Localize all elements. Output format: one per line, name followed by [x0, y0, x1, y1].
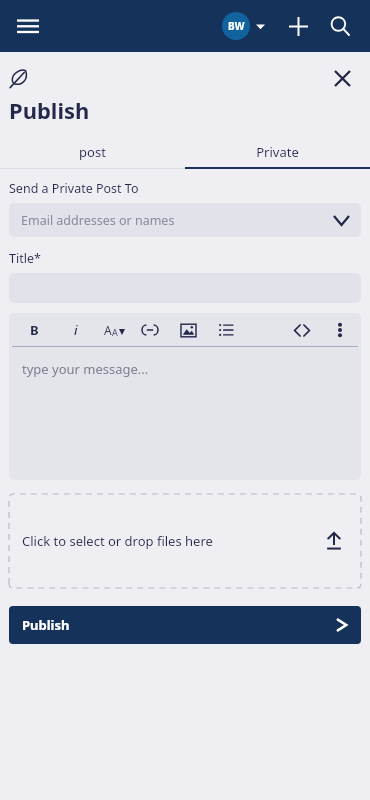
- staticText: Send a Private Post To: [9, 180, 139, 197]
- button[interactable]: Click to select or drop files here: [9, 494, 361, 588]
- button[interactable]: Code: [291, 319, 313, 341]
- staticText: Publish: [22, 616, 70, 634]
- button[interactable]: type your message...: [9, 347, 361, 480]
- button[interactable]: Italic: [65, 319, 87, 341]
- button[interactable]: Publish: [9, 606, 361, 644]
- button[interactable]: Logo: [9, 63, 39, 93]
- staticText: B: [30, 321, 39, 339]
- button[interactable]: Link: [139, 319, 161, 341]
- button[interactable]: Close: [324, 60, 360, 96]
- button[interactable]: post: [0, 135, 185, 169]
- button[interactable]: Search: [322, 8, 358, 44]
- button[interactable]: Bold: [23, 319, 45, 341]
- button[interactable]: Private: [185, 135, 370, 169]
- button[interactable]: Menu: [10, 8, 46, 44]
- staticText: Publish: [9, 95, 90, 125]
- staticText: A: [104, 322, 112, 338]
- button[interactable]: Insert image: [177, 319, 199, 341]
- button[interactable]: Email addresses or names: [9, 203, 361, 237]
- button[interactable]: Text size: [103, 319, 125, 341]
- button[interactable]: Account: [220, 12, 267, 40]
- button[interactable]: List: [215, 319, 237, 341]
- staticText: Email addresses or names: [21, 212, 175, 229]
- staticText: Title*: [9, 250, 41, 267]
- staticText: post: [79, 143, 106, 161]
- staticText: Private: [256, 143, 299, 161]
- staticText: A: [112, 326, 118, 338]
- staticText: i: [74, 321, 78, 339]
- staticText: BW: [228, 19, 245, 33]
- staticText: type your message...: [22, 360, 149, 378]
- staticText: Click to select or drop files here: [22, 532, 213, 550]
- button[interactable]: Add: [280, 8, 316, 44]
- button[interactable]: More: [329, 319, 351, 341]
